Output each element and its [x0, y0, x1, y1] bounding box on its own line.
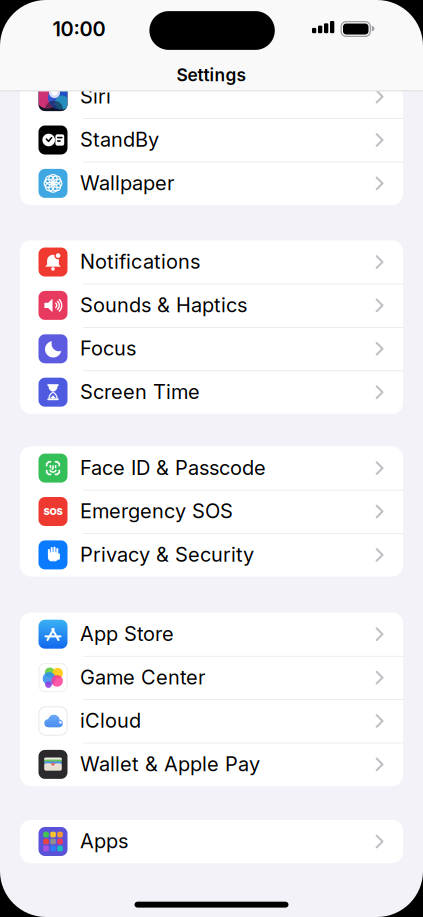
staticText: Emergency SOS: [80, 499, 233, 523]
button[interactable]: Face ID & Passcode: [20, 446, 403, 490]
button[interactable]: StandBy: [20, 118, 403, 162]
button[interactable]: Siri: [20, 75, 403, 118]
button[interactable]: Wallpaper: [20, 162, 403, 205]
button[interactable]: Wallet & Apple Pay: [20, 743, 403, 786]
button[interactable]: Game Center: [20, 656, 403, 699]
staticText: Screen Time: [80, 380, 200, 403]
staticText: Game Center: [80, 665, 205, 689]
staticText: 10:00: [52, 17, 105, 41]
staticText: Siri: [80, 84, 111, 108]
staticText: Apps: [80, 829, 128, 853]
button[interactable]: iCloud: [20, 699, 403, 743]
staticText: Notifications: [80, 250, 200, 273]
staticText: Wallet & Apple Pay: [80, 752, 260, 776]
staticText: Privacy & Security: [80, 543, 254, 566]
button[interactable]: Focus: [20, 327, 403, 370]
staticText: iCloud: [80, 709, 141, 732]
staticText: Face ID & Passcode: [80, 456, 266, 479]
button[interactable]: Privacy & Security: [20, 533, 403, 577]
button[interactable]: SOS: [20, 490, 403, 533]
button[interactable]: App Store: [20, 612, 403, 656]
button[interactable]: Sounds & Haptics: [20, 284, 403, 327]
staticText: SOS: [43, 506, 62, 517]
staticText: Sounds & Haptics: [80, 293, 247, 317]
staticText: App Store: [80, 622, 174, 645]
staticText: Focus: [80, 336, 136, 360]
staticText: Wallpaper: [80, 171, 174, 195]
button[interactable]: Apps: [20, 820, 403, 863]
staticText: Settings: [176, 65, 246, 85]
staticText: StandBy: [80, 128, 159, 151]
button[interactable]: Screen Time: [20, 370, 403, 414]
button[interactable]: Notifications: [20, 240, 403, 284]
